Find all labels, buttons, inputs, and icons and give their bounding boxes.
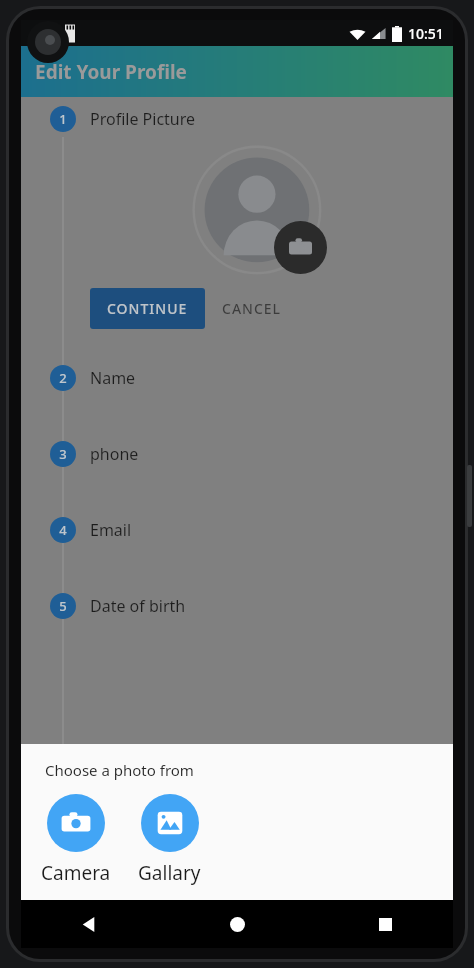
staticText: Email [90,519,132,541]
button[interactable]: Back [69,904,109,944]
button[interactable]: 1 [21,106,453,132]
staticText: Date of birth [90,595,186,617]
button[interactable]: 4 [21,517,453,543]
button[interactable]: CANCEL [205,288,299,329]
staticText: 4 [59,521,67,539]
staticText: 2 [59,369,67,387]
staticText: phone [90,443,139,465]
button[interactable]: 2 [21,365,453,391]
staticText: 5 [59,597,67,615]
staticText: CONTINUE [107,299,188,318]
button[interactable]: Camera [41,794,111,886]
button[interactable]: Change profile photo [274,221,327,274]
button[interactable]: 3 [21,441,453,467]
staticText: Profile Picture [90,108,196,130]
staticText: Gallary [138,860,201,886]
button[interactable]: Recent apps [365,904,405,944]
staticText: Name [90,367,136,389]
button[interactable]: Home [217,904,257,944]
staticText: 3 [59,445,67,463]
button[interactable]: 5 [21,593,453,619]
button[interactable]: CONTINUE [90,288,205,329]
button[interactable]: Gallary [138,794,201,886]
staticText: 10:51 [408,24,444,43]
staticText: Camera [41,860,111,886]
staticText: Choose a photo from [45,760,194,780]
staticText: CANCEL [222,299,282,318]
staticText: 1 [59,110,67,128]
staticText: Edit Your Profile [35,59,187,85]
